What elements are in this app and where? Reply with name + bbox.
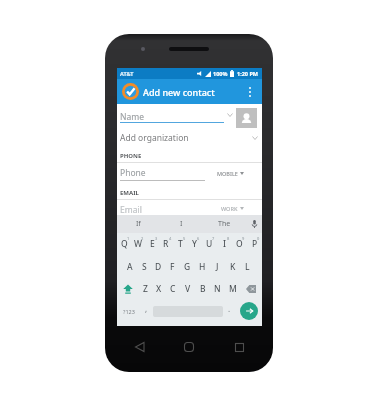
button[interactable]: 5: [173, 233, 187, 255]
staticText: W: [134, 238, 142, 250]
staticText: 1:20 PM: [237, 70, 259, 77]
staticText: 4: [169, 236, 172, 241]
staticText: 3: [155, 236, 158, 241]
staticText: 5: [183, 236, 186, 241]
staticText: WORK: [221, 205, 238, 212]
staticText: I: [180, 219, 183, 229]
staticText: S: [142, 261, 147, 273]
staticText: Add new contact: [143, 86, 215, 98]
button[interactable]: 7: [202, 233, 217, 255]
staticText: U: [206, 238, 213, 250]
button[interactable]: 0: [247, 233, 262, 255]
button[interactable]: 8: [217, 233, 232, 255]
button[interactable]: ,: [140, 300, 153, 322]
button[interactable]: N: [210, 278, 225, 300]
button[interactable]: A: [123, 255, 137, 278]
button[interactable]: L: [240, 255, 255, 278]
button[interactable]: More options: [242, 84, 258, 100]
staticText: N: [214, 283, 221, 295]
button[interactable]: If: [117, 215, 160, 233]
button[interactable]: B: [195, 278, 210, 300]
button[interactable]: K: [225, 255, 240, 278]
button[interactable]: I: [160, 215, 203, 233]
button[interactable]: 1: [117, 233, 131, 255]
staticText: 6: [197, 236, 200, 241]
staticText: 9: [242, 236, 245, 241]
staticText: L: [245, 261, 250, 273]
staticText: If: [136, 219, 141, 229]
button[interactable]: Enter: [236, 300, 262, 322]
button[interactable]: WORK: [220, 205, 245, 212]
staticText: The: [218, 219, 231, 229]
button[interactable]: Add organization: [120, 126, 258, 150]
button[interactable]: J: [210, 255, 225, 278]
staticText: Phone: [120, 167, 146, 179]
button[interactable]: Add photo: [236, 108, 257, 128]
button[interactable]: Shift: [117, 278, 138, 300]
staticText: Name: [120, 111, 144, 123]
staticText: T: [178, 238, 183, 250]
staticText: Email: [120, 204, 142, 215]
staticText: P: [252, 238, 258, 250]
staticText: H: [199, 261, 206, 273]
staticText: AT&T: [120, 70, 134, 77]
staticText: 2: [141, 236, 144, 241]
button[interactable]: ?123: [117, 300, 140, 322]
staticText: 0: [257, 236, 260, 241]
button[interactable]: H: [195, 255, 210, 278]
button[interactable]: 9: [232, 233, 247, 255]
staticText: V: [185, 283, 191, 295]
staticText: R: [163, 238, 169, 250]
button[interactable]: V: [180, 278, 195, 300]
staticText: Y: [192, 238, 197, 250]
button[interactable]: Save contact: [120, 81, 140, 101]
staticText: D: [155, 261, 162, 273]
button[interactable]: MOBILE: [216, 170, 245, 177]
staticText: Add organization: [120, 132, 189, 144]
button[interactable]: Z: [138, 278, 152, 300]
staticText: Z: [143, 283, 148, 295]
button[interactable]: C: [166, 278, 180, 300]
button[interactable]: Voice input: [246, 215, 262, 233]
button[interactable]: Backspace: [240, 278, 262, 300]
button[interactable]: Back: [127, 335, 151, 359]
staticText: PHONE: [120, 152, 142, 160]
button[interactable]: F: [165, 255, 180, 278]
staticText: EMAIL: [120, 189, 139, 197]
staticText: Q: [121, 238, 128, 250]
staticText: C: [170, 283, 176, 295]
button[interactable]: D: [151, 255, 165, 278]
button[interactable]: M: [225, 278, 240, 300]
staticText: I: [223, 238, 227, 250]
staticText: O: [236, 238, 243, 250]
staticText: E: [150, 238, 155, 250]
staticText: A: [127, 261, 133, 273]
staticText: J: [216, 261, 219, 273]
button[interactable]: G: [180, 255, 195, 278]
button[interactable]: .: [223, 300, 236, 322]
button[interactable]: X: [152, 278, 166, 300]
button[interactable]: 2: [131, 233, 145, 255]
button[interactable]: Home: [177, 335, 201, 359]
staticText: ?123: [123, 308, 135, 315]
staticText: M: [229, 283, 237, 295]
staticText: 1: [127, 236, 130, 241]
staticText: .: [228, 303, 231, 314]
staticText: F: [170, 261, 175, 273]
staticText: 7: [212, 236, 215, 241]
staticText: ,: [145, 303, 148, 314]
button[interactable]: S: [137, 255, 151, 278]
staticText: MOBILE: [217, 170, 238, 177]
staticText: X: [156, 283, 162, 295]
button[interactable]: Recents: [227, 335, 251, 359]
staticText: 8: [227, 236, 230, 241]
button[interactable]: 6: [187, 233, 202, 255]
button[interactable]: 4: [159, 233, 173, 255]
staticText: 100%: [213, 70, 228, 77]
button[interactable]: 3: [145, 233, 159, 255]
button[interactable]: The: [203, 215, 246, 233]
staticText: B: [200, 283, 206, 295]
staticText: G: [184, 261, 191, 273]
staticText: K: [230, 261, 236, 273]
